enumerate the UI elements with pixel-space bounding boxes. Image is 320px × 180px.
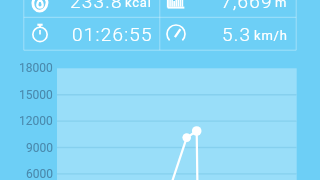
staticText: km/h — [254, 28, 288, 43]
staticText: 9000 — [26, 141, 53, 155]
button[interactable]: Calories — [24, 0, 160, 17]
staticText: 12000 — [19, 114, 53, 128]
button[interactable]: Speed — [160, 17, 296, 50]
staticText: 15000 — [19, 88, 53, 102]
staticText: 233.8 — [70, 0, 123, 12]
staticText: 01:26:55 — [72, 23, 153, 45]
staticText: kcal — [125, 0, 152, 10]
staticText: 7,669 — [221, 0, 273, 12]
staticText: 5.3 — [222, 23, 252, 45]
button[interactable]: Elevation — [160, 0, 296, 17]
staticText: 18000 — [19, 61, 53, 75]
button[interactable]: Duration — [24, 17, 160, 50]
staticText: m — [275, 0, 288, 10]
staticText: 6000 — [26, 167, 53, 180]
